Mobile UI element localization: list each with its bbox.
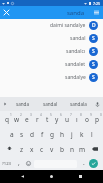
button[interactable]: r: [32, 112, 42, 125]
button[interactable]: sanda: [9, 97, 36, 111]
button[interactable]: m: [77, 142, 87, 155]
staticText: n: [70, 145, 75, 154]
staticText: v: [50, 145, 54, 154]
button[interactable]: q: [1, 112, 12, 125]
button[interactable]: s: [17, 127, 27, 140]
button[interactable]: n: [67, 142, 77, 155]
button[interactable]: j: [67, 127, 77, 140]
button[interactable]: t: [42, 112, 52, 125]
button[interactable]: daimi sandalye: [0, 19, 103, 32]
button[interactable]: y: [52, 112, 62, 125]
staticText: q: [5, 115, 9, 124]
button[interactable]: f: [37, 127, 47, 140]
staticText: d: [30, 130, 34, 139]
staticText: a: [10, 130, 14, 139]
staticText: z: [20, 145, 24, 154]
staticText: 6: [60, 113, 62, 117]
button[interactable]: w: [12, 112, 22, 125]
button[interactable]: a: [7, 127, 17, 140]
staticText: m: [79, 145, 86, 154]
staticText: x: [30, 145, 34, 154]
button[interactable]: c: [37, 142, 47, 155]
staticText: sanda: [67, 9, 85, 17]
button[interactable]: l: [87, 127, 97, 140]
button[interactable]: sandal: [36, 97, 64, 111]
button[interactable]: Close: [0, 6, 13, 19]
button[interactable]: sandalcı: [0, 45, 103, 58]
staticText: k: [80, 130, 84, 139]
button[interactable]: b: [57, 142, 67, 155]
button[interactable]: Shift: [1, 142, 17, 155]
button[interactable]: sandalye: [0, 71, 103, 84]
staticText: daimi sandalye: [50, 22, 86, 29]
button[interactable]: o: [82, 112, 92, 125]
staticText: 4: [40, 113, 42, 117]
staticText: sandalye: [65, 74, 86, 81]
staticText: h: [60, 130, 65, 139]
button[interactable]: Expand suggestions: [0, 97, 9, 111]
staticText: 0: [100, 113, 102, 117]
button[interactable]: u: [62, 112, 72, 125]
staticText: w: [14, 115, 20, 124]
button[interactable]: d: [27, 127, 37, 140]
button[interactable]: Emoji: [23, 157, 33, 170]
staticText: .: [83, 158, 85, 167]
staticText: ?123: [2, 161, 12, 167]
staticText: S: [92, 35, 95, 42]
staticText: 2: [20, 113, 22, 117]
staticText: sandal: [43, 101, 58, 107]
staticText: o: [85, 115, 89, 124]
staticText: f: [41, 130, 44, 139]
staticText: 7: [70, 113, 72, 117]
staticText: 5: [50, 113, 52, 117]
staticText: l: [91, 130, 93, 139]
button[interactable]: Menu: [90, 6, 103, 19]
button[interactable]: Back: [16, 170, 29, 183]
staticText: p: [95, 115, 99, 124]
button[interactable]: e: [22, 112, 32, 125]
button[interactable]: k: [77, 127, 87, 140]
staticText: 8: [80, 113, 82, 117]
staticText: e: [25, 115, 29, 124]
button[interactable]: x: [27, 142, 37, 155]
staticText: 3: [30, 113, 32, 117]
staticText: sandal: [70, 35, 86, 42]
button[interactable]: g: [47, 127, 57, 140]
staticText: S: [92, 74, 95, 81]
staticText: t: [46, 115, 49, 124]
button[interactable]: sandal: [0, 32, 103, 45]
button[interactable]: sandala: [64, 97, 92, 111]
staticText: r: [36, 115, 39, 124]
button[interactable]: v: [47, 142, 57, 155]
button[interactable]: p: [92, 112, 102, 125]
staticText: S: [92, 61, 95, 68]
staticText: y: [55, 115, 59, 124]
button[interactable]: ı: [72, 112, 82, 125]
button[interactable]: Search: [89, 159, 98, 168]
staticText: 7:25: [93, 1, 101, 6]
button[interactable]: Backspace: [87, 142, 102, 155]
staticText: sandalcı: [66, 48, 86, 55]
button[interactable]: z: [17, 142, 27, 155]
staticText: S: [92, 48, 95, 55]
staticText: c: [40, 145, 44, 154]
staticText: D: [92, 22, 96, 29]
staticText: sandalet: [65, 61, 86, 68]
button[interactable]: ,: [13, 157, 24, 170]
staticText: g: [50, 130, 54, 139]
button[interactable]: sandalet: [0, 58, 103, 71]
button[interactable]: Home: [45, 170, 58, 183]
staticText: ı: [76, 115, 78, 124]
button[interactable]: h: [57, 127, 67, 140]
staticText: b: [60, 145, 64, 154]
staticText: s: [20, 130, 24, 139]
button[interactable]: .: [79, 157, 89, 170]
staticText: 1: [10, 113, 12, 117]
button[interactable]: Recents: [74, 170, 87, 183]
button[interactable]: ?123: [0, 157, 13, 170]
staticText: sanda: [16, 101, 30, 107]
staticText: u: [65, 115, 70, 124]
staticText: ,: [18, 158, 20, 167]
button[interactable]: Voice input: [92, 97, 103, 111]
